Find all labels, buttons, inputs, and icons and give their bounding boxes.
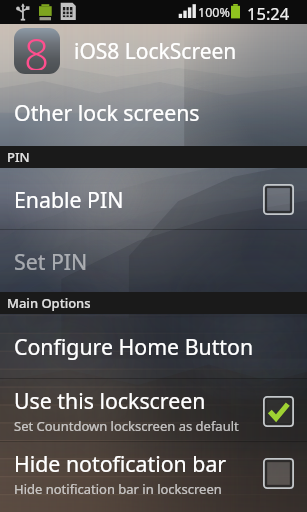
staticText: PIN bbox=[7, 148, 30, 166]
button[interactable]: Configure Home Button bbox=[0, 314, 307, 379]
staticText: 100% bbox=[198, 4, 230, 21]
button[interactable]: Hide notofication bar bbox=[0, 442, 307, 504]
staticText: Set PIN bbox=[14, 247, 88, 276]
button[interactable]: Set PIN bbox=[0, 230, 307, 292]
staticText: 15:24 bbox=[247, 2, 290, 24]
staticText: Hide notofication bar bbox=[14, 449, 227, 478]
button[interactable]: Use this lockscreen bbox=[260, 393, 296, 429]
button[interactable]: Use this lockscreen bbox=[0, 379, 307, 442]
button[interactable]: Enable PIN bbox=[0, 168, 307, 230]
staticText: Use this lockscreen bbox=[14, 386, 206, 415]
staticText: Configure Home Button bbox=[14, 332, 254, 361]
staticText: Main Options bbox=[7, 294, 91, 312]
staticText: Enable PIN bbox=[14, 185, 124, 214]
staticText: Hide notification bar in lockscreen bbox=[14, 480, 222, 498]
staticText: Other lock screens bbox=[14, 98, 200, 127]
button[interactable]: 8 bbox=[0, 24, 307, 78]
staticText: 8 bbox=[24, 28, 50, 70]
staticText: iOS8 LockScreen bbox=[74, 37, 237, 66]
button[interactable]: Other lock screens bbox=[0, 78, 307, 146]
button[interactable]: Enable PIN bbox=[260, 181, 296, 217]
staticText: Set Countdown lockscreen as default bbox=[14, 417, 239, 435]
button[interactable]: Hide notofication bar bbox=[260, 455, 296, 491]
